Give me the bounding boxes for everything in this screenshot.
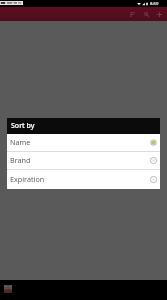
button[interactable]: Name — [7, 134, 160, 151]
button[interactable]: Sort — [126, 7, 138, 21]
button[interactable]: Search — [140, 7, 152, 21]
staticText: Brand — [10, 155, 31, 165]
button[interactable]: Add — [153, 7, 165, 21]
staticText: Name — [10, 137, 31, 147]
button[interactable]: Brand — [7, 152, 160, 169]
staticText: 8:50 — [150, 1, 159, 7]
staticText: Expiration — [10, 174, 45, 184]
button[interactable]: Expiration — [7, 170, 160, 189]
button[interactable]: App icon — [4, 285, 12, 293]
staticText: Sort by — [11, 121, 35, 131]
